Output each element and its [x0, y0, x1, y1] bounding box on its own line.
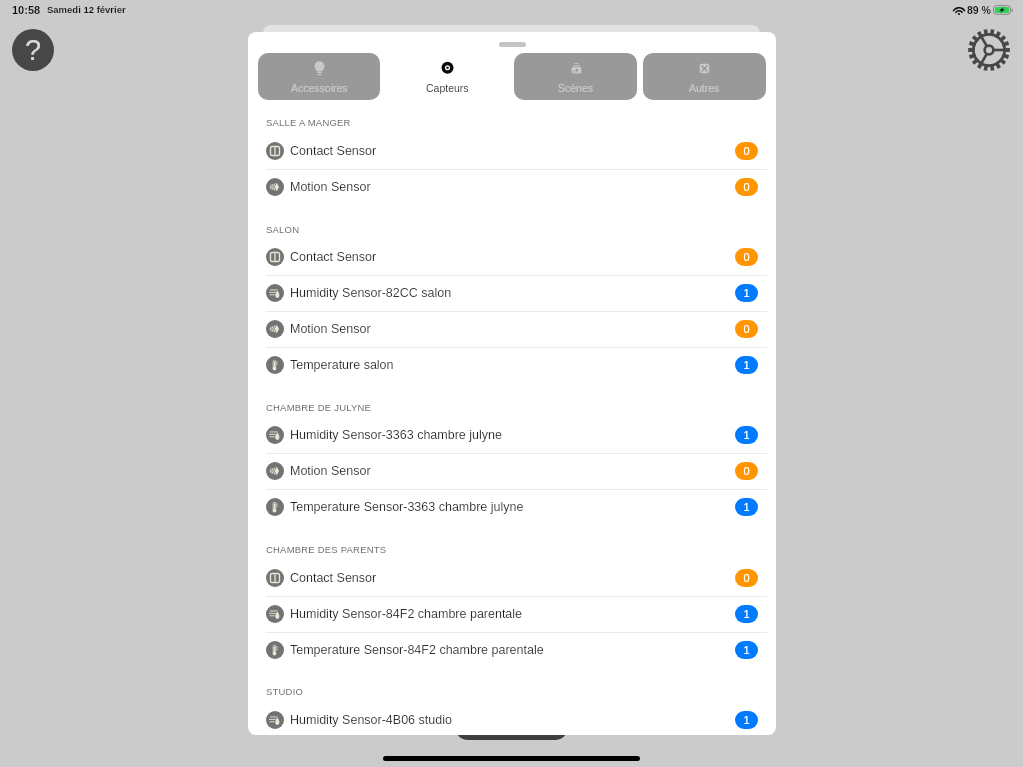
staticText: CHAMBRE DES PARENTS	[266, 544, 387, 555]
button[interactable]: Humidity Sensor-3363 chambre julyne	[248, 417, 776, 453]
staticText: Humidity Sensor-84F2 chambre parentale	[290, 607, 523, 621]
staticText: Temperature Sensor-3363 chambre julyne	[290, 500, 524, 514]
button[interactable]: Contact Sensor	[248, 133, 776, 169]
staticText: 1	[743, 644, 750, 656]
staticText: Scènes	[558, 82, 594, 94]
staticText: 1	[743, 429, 750, 441]
button[interactable]: Humidity Sensor-4B06 studio	[248, 702, 776, 735]
button[interactable]: Accessoires	[258, 53, 380, 100]
staticText: Temperature Sensor-84F2 chambre parental…	[290, 643, 544, 657]
staticText: Humidity Sensor-4B06 studio	[290, 713, 452, 727]
staticText: Contact Sensor	[290, 250, 377, 264]
staticText: Temperature salon	[290, 358, 394, 372]
button[interactable]: Motion Sensor	[248, 453, 776, 489]
button[interactable]: Temperature salon	[248, 347, 776, 383]
button[interactable]: Contact Sensor	[248, 239, 776, 275]
button[interactable]: Motion Sensor	[248, 169, 776, 205]
staticText: SALLE A MANGER	[266, 117, 351, 128]
staticText: 0	[743, 465, 750, 477]
staticText: 0	[743, 251, 750, 263]
staticText: 1	[743, 501, 750, 513]
button[interactable]: Humidity Sensor-84F2 chambre parentale	[248, 596, 776, 632]
staticText: 1	[743, 287, 750, 299]
staticText: Autres	[689, 82, 720, 94]
button[interactable]: Temperature Sensor-3363 chambre julyne	[248, 489, 776, 525]
staticText: Humidity Sensor-3363 chambre julyne	[290, 428, 502, 442]
button[interactable]: Settings	[967, 28, 1011, 72]
staticText: Motion Sensor	[290, 464, 371, 478]
button[interactable]: Contact Sensor	[248, 560, 776, 596]
staticText: Samedi 12 février	[47, 4, 126, 15]
button[interactable]: Humidity Sensor-82CC salon	[248, 275, 776, 311]
staticText: 0	[743, 323, 750, 335]
staticText: 89 %	[967, 4, 991, 16]
staticText: 1	[743, 359, 750, 371]
staticText: 10:58	[12, 4, 41, 16]
button[interactable]: Capteurs	[386, 53, 508, 100]
staticText: Contact Sensor	[290, 144, 377, 158]
staticText: 0	[743, 572, 750, 584]
staticText: Motion Sensor	[290, 180, 371, 194]
staticText: STUDIO	[266, 686, 304, 697]
button[interactable]: Temperature Sensor-84F2 chambre parental…	[248, 632, 776, 668]
staticText: ?	[25, 34, 42, 66]
staticText: 0	[743, 181, 750, 193]
staticText: Accessoires	[291, 82, 348, 94]
staticText: Contact Sensor	[290, 571, 377, 585]
staticText: 0	[743, 145, 750, 157]
staticText: SALON	[266, 224, 300, 235]
staticText: 1	[743, 714, 750, 726]
button[interactable]: Autres	[643, 53, 766, 100]
staticText: Humidity Sensor-82CC salon	[290, 286, 452, 300]
staticText: Capteurs	[426, 82, 469, 94]
button[interactable]: Help	[12, 29, 54, 71]
button[interactable]: Motion Sensor	[248, 311, 776, 347]
staticText: Motion Sensor	[290, 322, 371, 336]
staticText: CHAMBRE DE JULYNE	[266, 402, 372, 413]
staticText: 1	[743, 608, 750, 620]
button[interactable]: Scènes	[514, 53, 637, 100]
